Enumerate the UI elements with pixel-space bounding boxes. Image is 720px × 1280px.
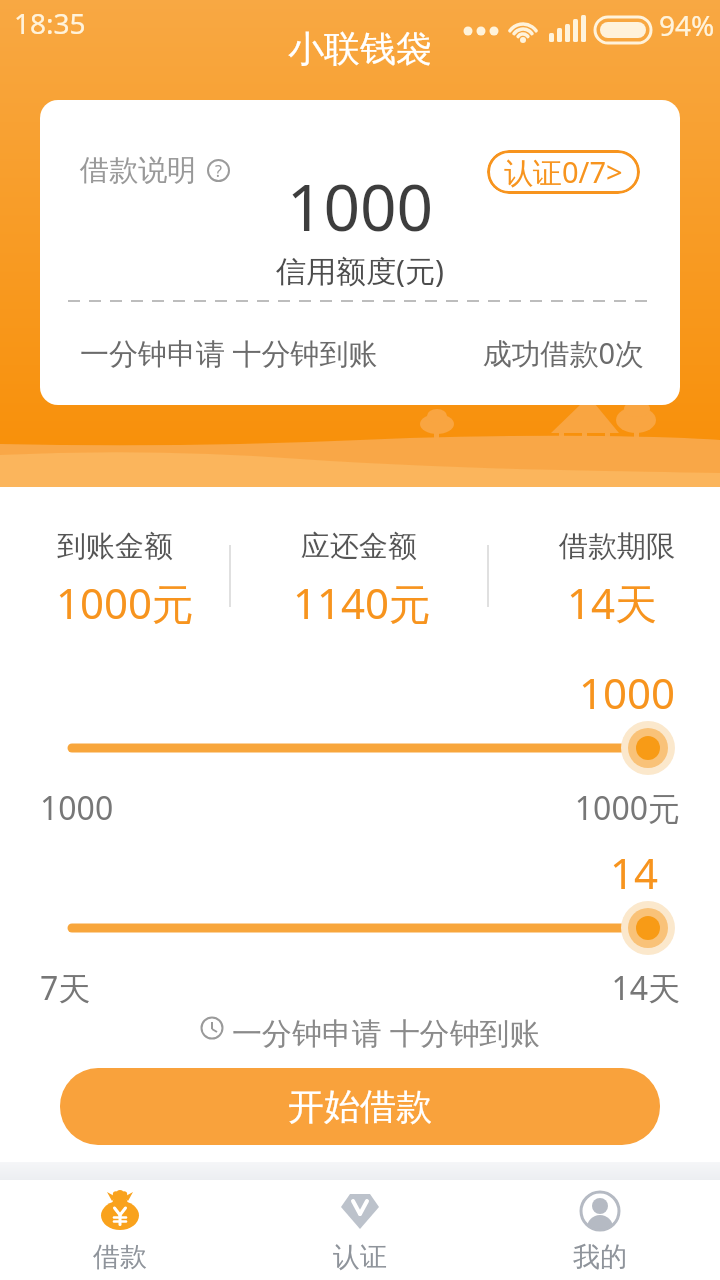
staticText: 认证0/7> [504, 152, 623, 192]
staticText: 1000元 [56, 574, 195, 624]
staticText: 认证 [333, 1240, 387, 1274]
staticText: 借款期限 [559, 528, 675, 565]
button[interactable]: 我的 [480, 1180, 720, 1280]
staticText: 14天 [567, 574, 658, 624]
staticText: 成功借款0次 [40, 333, 644, 373]
staticText: ? [215, 160, 222, 182]
button[interactable]: 应还金额 [231, 528, 487, 624]
button[interactable]: 到账金额 [0, 528, 229, 624]
button[interactable]: 认证0/7> [487, 150, 640, 194]
button[interactable]: 借款 [0, 1180, 240, 1280]
staticText: 7天 [40, 966, 91, 1010]
staticText: 14天 [0, 966, 680, 1010]
staticText: 我的 [573, 1240, 627, 1274]
staticText: 一分钟申请 十分钟到账 [80, 333, 378, 373]
staticText: 一分钟申请 十分钟到账 [232, 1012, 540, 1053]
staticText: 1140元 [293, 574, 432, 624]
staticText: 1000元 [0, 786, 680, 830]
staticText: 1000 [40, 163, 680, 250]
button[interactable]: 开始借款 [60, 1068, 660, 1145]
staticText: 18:35 [14, 4, 86, 42]
staticText: 借款 [93, 1240, 147, 1274]
staticText: 开始借款 [288, 1084, 432, 1129]
staticText: 94% [659, 6, 715, 44]
staticText: 到账金额 [57, 528, 173, 565]
staticText: 1000 [0, 664, 675, 721]
staticText: 14 [0, 844, 658, 901]
staticText: 1000 [40, 786, 114, 830]
button[interactable]: 借款说明 [80, 152, 230, 189]
button[interactable]: 认证 [240, 1180, 480, 1280]
staticText: 小联钱袋 [0, 26, 720, 71]
staticText: 应还金额 [301, 528, 417, 565]
button[interactable]: 借款期限 [489, 528, 720, 624]
staticText: 借款说明 [80, 152, 196, 189]
staticText: 信用额度(元) [40, 250, 680, 291]
